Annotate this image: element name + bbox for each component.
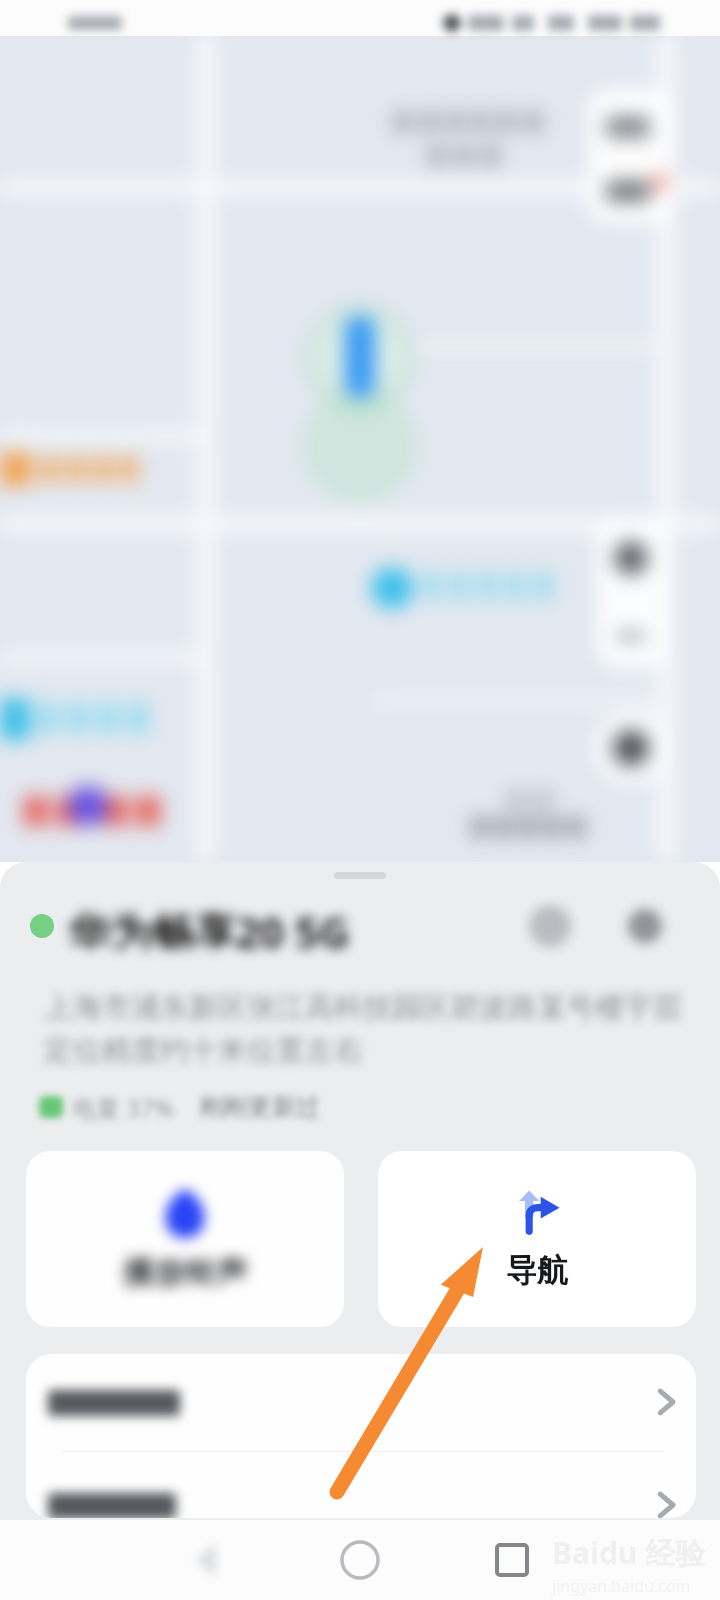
button[interactable]: Play sound (26, 1151, 344, 1327)
button[interactable]: 查看历史轨迹 (26, 1354, 696, 1450)
staticText: 刚刚更新过 (200, 1092, 320, 1122)
staticText: 导航 (506, 1251, 568, 1290)
staticText: 电量 37% (72, 1091, 174, 1124)
button[interactable]: Recent apps (472, 1520, 552, 1600)
staticText: 播放铃声 (123, 1253, 247, 1292)
staticText: Baidu 经验 (552, 1532, 706, 1573)
button[interactable]: Locate device (519, 895, 581, 957)
button[interactable]: 设备设置 (26, 1452, 696, 1518)
staticText: jingyan.baidu.com (552, 1575, 691, 1597)
button[interactable]: Home (320, 1520, 400, 1600)
button[interactable]: 导航 (378, 1151, 696, 1327)
button[interactable]: Back (170, 1520, 250, 1600)
button[interactable]: More options (614, 895, 676, 957)
staticText: 华为畅享20 5G (68, 903, 350, 949)
staticText: 上海市浦东新区张江高科技园区碧波路某号楼宇层 定位精度约十米位置左右 (44, 989, 682, 1069)
